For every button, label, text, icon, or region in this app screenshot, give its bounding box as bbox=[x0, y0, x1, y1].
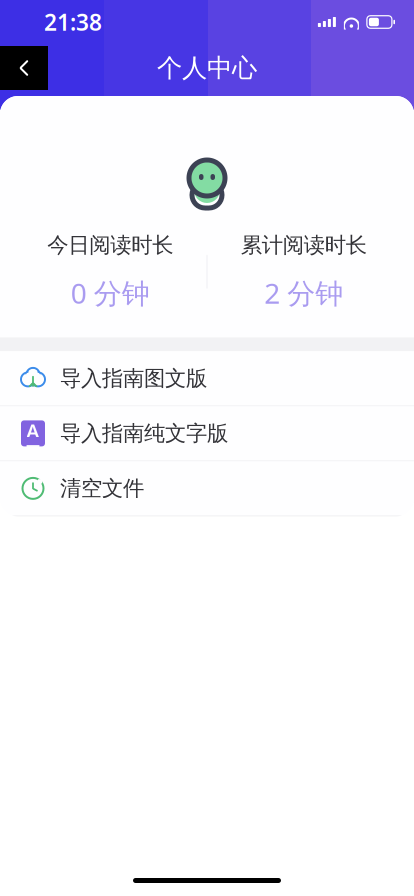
button[interactable]: A bbox=[0, 406, 414, 460]
staticText: A bbox=[26, 418, 39, 443]
button[interactable]: 清空文件 bbox=[0, 461, 414, 515]
staticText: 0 分钟 bbox=[71, 274, 150, 311]
button[interactable]: 导入指南图文版 bbox=[0, 351, 414, 405]
staticText: 导入指南纯文字版 bbox=[60, 420, 228, 446]
staticText: 个人中心 bbox=[157, 52, 257, 83]
staticText: 导入指南图文版 bbox=[60, 365, 207, 391]
staticText: 累计阅读时长 bbox=[241, 232, 367, 258]
staticText: 21:38 bbox=[44, 7, 102, 37]
staticText: 清空文件 bbox=[60, 475, 144, 501]
button[interactable]: 返回 bbox=[0, 46, 48, 90]
staticText: 2 分钟 bbox=[264, 274, 343, 311]
staticText: 今日阅读时长 bbox=[47, 232, 173, 258]
